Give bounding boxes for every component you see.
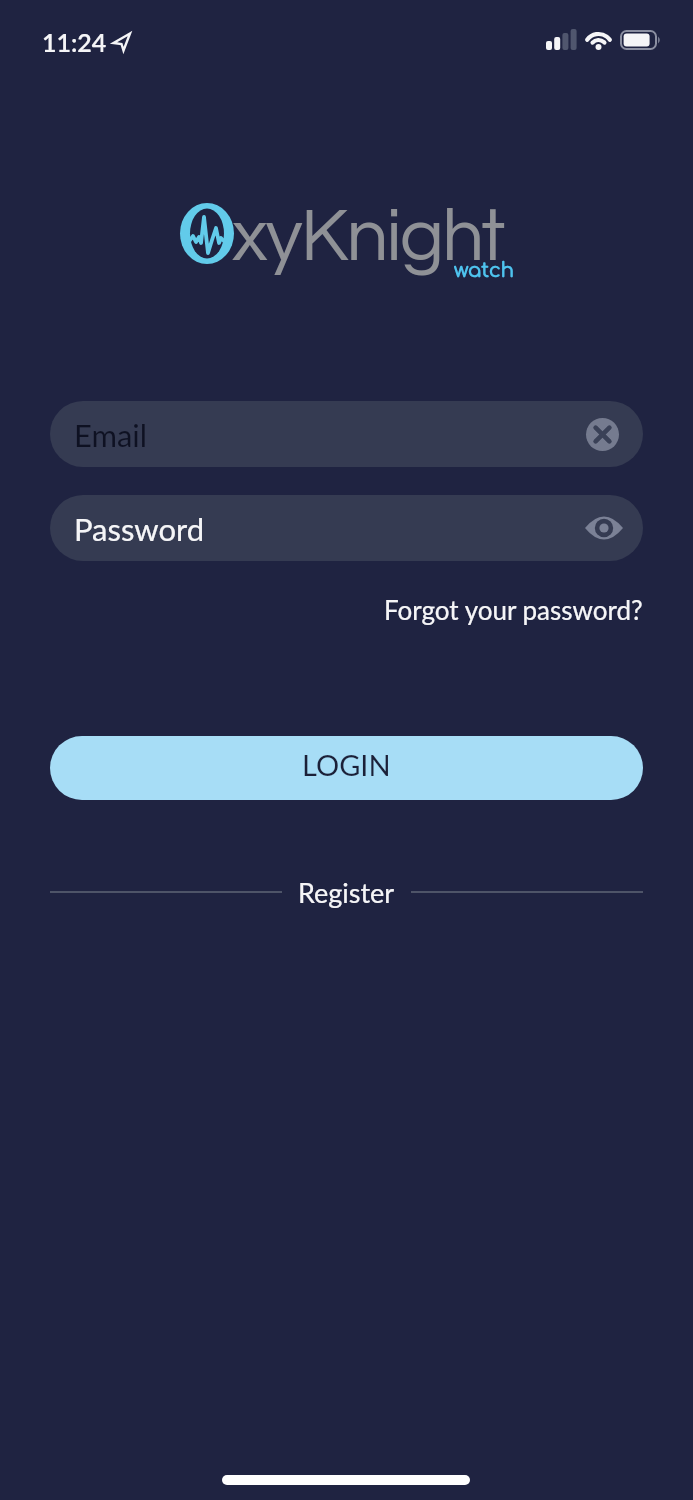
button[interactable]: Register: [298, 876, 395, 908]
staticText: Email: [74, 416, 148, 453]
staticText: 11:24: [42, 27, 107, 57]
staticText: xyKnight: [232, 199, 504, 275]
staticText: LOGIN: [302, 747, 391, 782]
button[interactable]: Email: [50, 401, 643, 467]
staticText: watch: [454, 260, 514, 282]
button[interactable]: LOGIN: [50, 736, 643, 800]
staticText: Password: [74, 510, 205, 547]
button[interactable]: Password: [50, 495, 643, 561]
button[interactable]: Forgot your password?: [384, 594, 643, 625]
